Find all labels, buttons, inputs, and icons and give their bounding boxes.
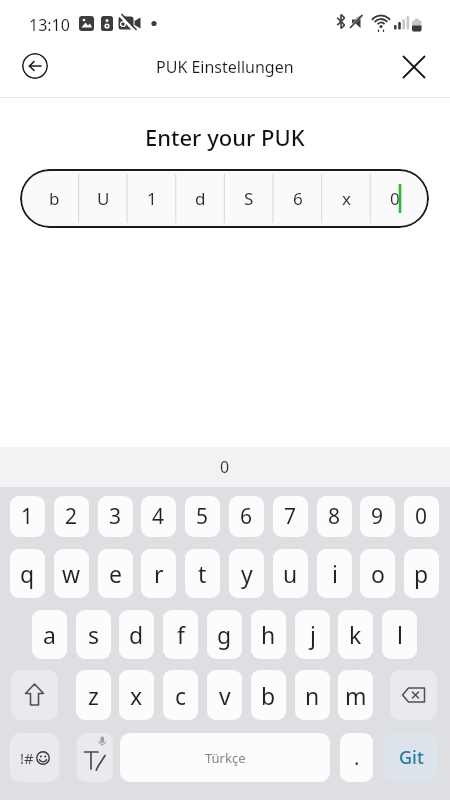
button[interactable]: 8 bbox=[317, 496, 352, 537]
button[interactable]: b bbox=[20, 169, 429, 228]
staticText: 1 bbox=[147, 187, 157, 210]
button[interactable]: i bbox=[317, 549, 352, 598]
button[interactable] bbox=[11, 670, 58, 720]
button[interactable]: h bbox=[251, 610, 286, 659]
button[interactable]: Git bbox=[384, 733, 438, 782]
button[interactable]: q bbox=[10, 549, 45, 598]
staticText: j bbox=[310, 619, 316, 650]
staticText: b bbox=[261, 680, 276, 711]
staticText: 9 bbox=[371, 502, 384, 531]
button[interactable]: d bbox=[119, 610, 154, 659]
staticText: o bbox=[371, 558, 385, 589]
button[interactable]: e bbox=[98, 549, 133, 598]
staticText: S bbox=[244, 187, 254, 210]
staticText: e bbox=[109, 558, 122, 589]
button[interactable]: k bbox=[338, 610, 373, 659]
button[interactable]: t bbox=[185, 549, 220, 598]
staticText: f bbox=[177, 619, 185, 650]
button[interactable]: w bbox=[54, 549, 89, 598]
button[interactable]: v bbox=[207, 670, 242, 720]
button[interactable]: Türkçe bbox=[120, 733, 330, 782]
staticText: t bbox=[198, 558, 207, 589]
button[interactable]: f bbox=[163, 610, 198, 659]
button[interactable]: l bbox=[382, 610, 417, 659]
staticText: Türkçe bbox=[205, 749, 246, 767]
staticText: m bbox=[345, 680, 367, 711]
staticText: l bbox=[397, 619, 403, 650]
staticText: PUK Einstellungen bbox=[156, 56, 294, 78]
staticText: Git bbox=[399, 745, 424, 770]
staticText: 7 bbox=[284, 502, 297, 531]
staticText: a bbox=[43, 619, 56, 650]
button[interactable]: r bbox=[141, 549, 176, 598]
button[interactable]: z bbox=[76, 670, 111, 720]
staticText: 5 bbox=[196, 502, 209, 531]
button[interactable]: . bbox=[340, 733, 373, 782]
staticText: 0 bbox=[220, 456, 230, 478]
button[interactable]: x bbox=[119, 670, 154, 720]
staticText: 6 bbox=[240, 502, 253, 531]
button[interactable]: 9 bbox=[360, 496, 395, 537]
staticText: r bbox=[154, 558, 164, 589]
button[interactable]: 5 bbox=[185, 496, 220, 537]
staticText: h bbox=[261, 619, 276, 650]
staticText: k bbox=[349, 619, 362, 650]
button[interactable]: m bbox=[338, 670, 373, 720]
staticText: . bbox=[354, 744, 360, 771]
button[interactable] bbox=[77, 733, 113, 782]
staticText: w bbox=[62, 558, 81, 589]
button[interactable]: 6 bbox=[229, 496, 264, 537]
staticText: Enter your PUK bbox=[145, 122, 305, 152]
button[interactable]: n bbox=[295, 670, 330, 720]
staticText: i bbox=[332, 558, 338, 589]
staticText: !# bbox=[20, 748, 34, 768]
staticText: z bbox=[88, 680, 99, 711]
button[interactable]: 0 bbox=[404, 496, 439, 537]
button[interactable]: u bbox=[273, 549, 308, 598]
staticText: c bbox=[175, 680, 187, 711]
button[interactable]: 4 bbox=[141, 496, 176, 537]
staticText: y bbox=[241, 558, 253, 589]
staticText: n bbox=[305, 680, 320, 711]
staticText: p bbox=[414, 558, 429, 589]
staticText: U bbox=[97, 187, 110, 210]
button[interactable]: b bbox=[251, 670, 286, 720]
staticText: x bbox=[130, 680, 143, 711]
staticText: u bbox=[283, 558, 298, 589]
button[interactable]: 1 bbox=[10, 496, 45, 537]
button[interactable]: 7 bbox=[273, 496, 308, 537]
staticText: 6 bbox=[293, 187, 303, 210]
staticText: q bbox=[20, 558, 35, 589]
button[interactable]: o bbox=[360, 549, 395, 598]
staticText: 1 bbox=[21, 502, 34, 531]
staticText: 3 bbox=[109, 502, 122, 531]
button[interactable]: 0 bbox=[0, 447, 450, 487]
staticText: x bbox=[342, 187, 351, 210]
button[interactable] bbox=[400, 53, 428, 81]
staticText: 4 bbox=[152, 502, 165, 531]
button[interactable]: j bbox=[295, 610, 330, 659]
staticText: 8 bbox=[328, 502, 341, 531]
button[interactable]: y bbox=[229, 549, 264, 598]
button[interactable]: p bbox=[404, 549, 439, 598]
staticText: 0 bbox=[390, 187, 400, 210]
staticText: d bbox=[195, 187, 206, 210]
button[interactable] bbox=[22, 53, 48, 79]
button[interactable]: g bbox=[207, 610, 242, 659]
staticText: 2 bbox=[65, 502, 78, 531]
staticText: 13:10 bbox=[29, 14, 70, 36]
button[interactable] bbox=[390, 670, 437, 720]
staticText: d bbox=[129, 619, 144, 650]
staticText: b bbox=[49, 187, 60, 210]
button[interactable]: !# bbox=[10, 733, 59, 782]
button[interactable]: 3 bbox=[98, 496, 133, 537]
button[interactable]: 2 bbox=[54, 496, 89, 537]
button[interactable]: c bbox=[163, 670, 198, 720]
staticText: s bbox=[88, 619, 100, 650]
staticText: v bbox=[219, 680, 231, 711]
staticText: 0 bbox=[415, 502, 428, 531]
button[interactable]: a bbox=[32, 610, 67, 659]
button[interactable]: s bbox=[76, 610, 111, 659]
staticText: g bbox=[217, 619, 232, 650]
